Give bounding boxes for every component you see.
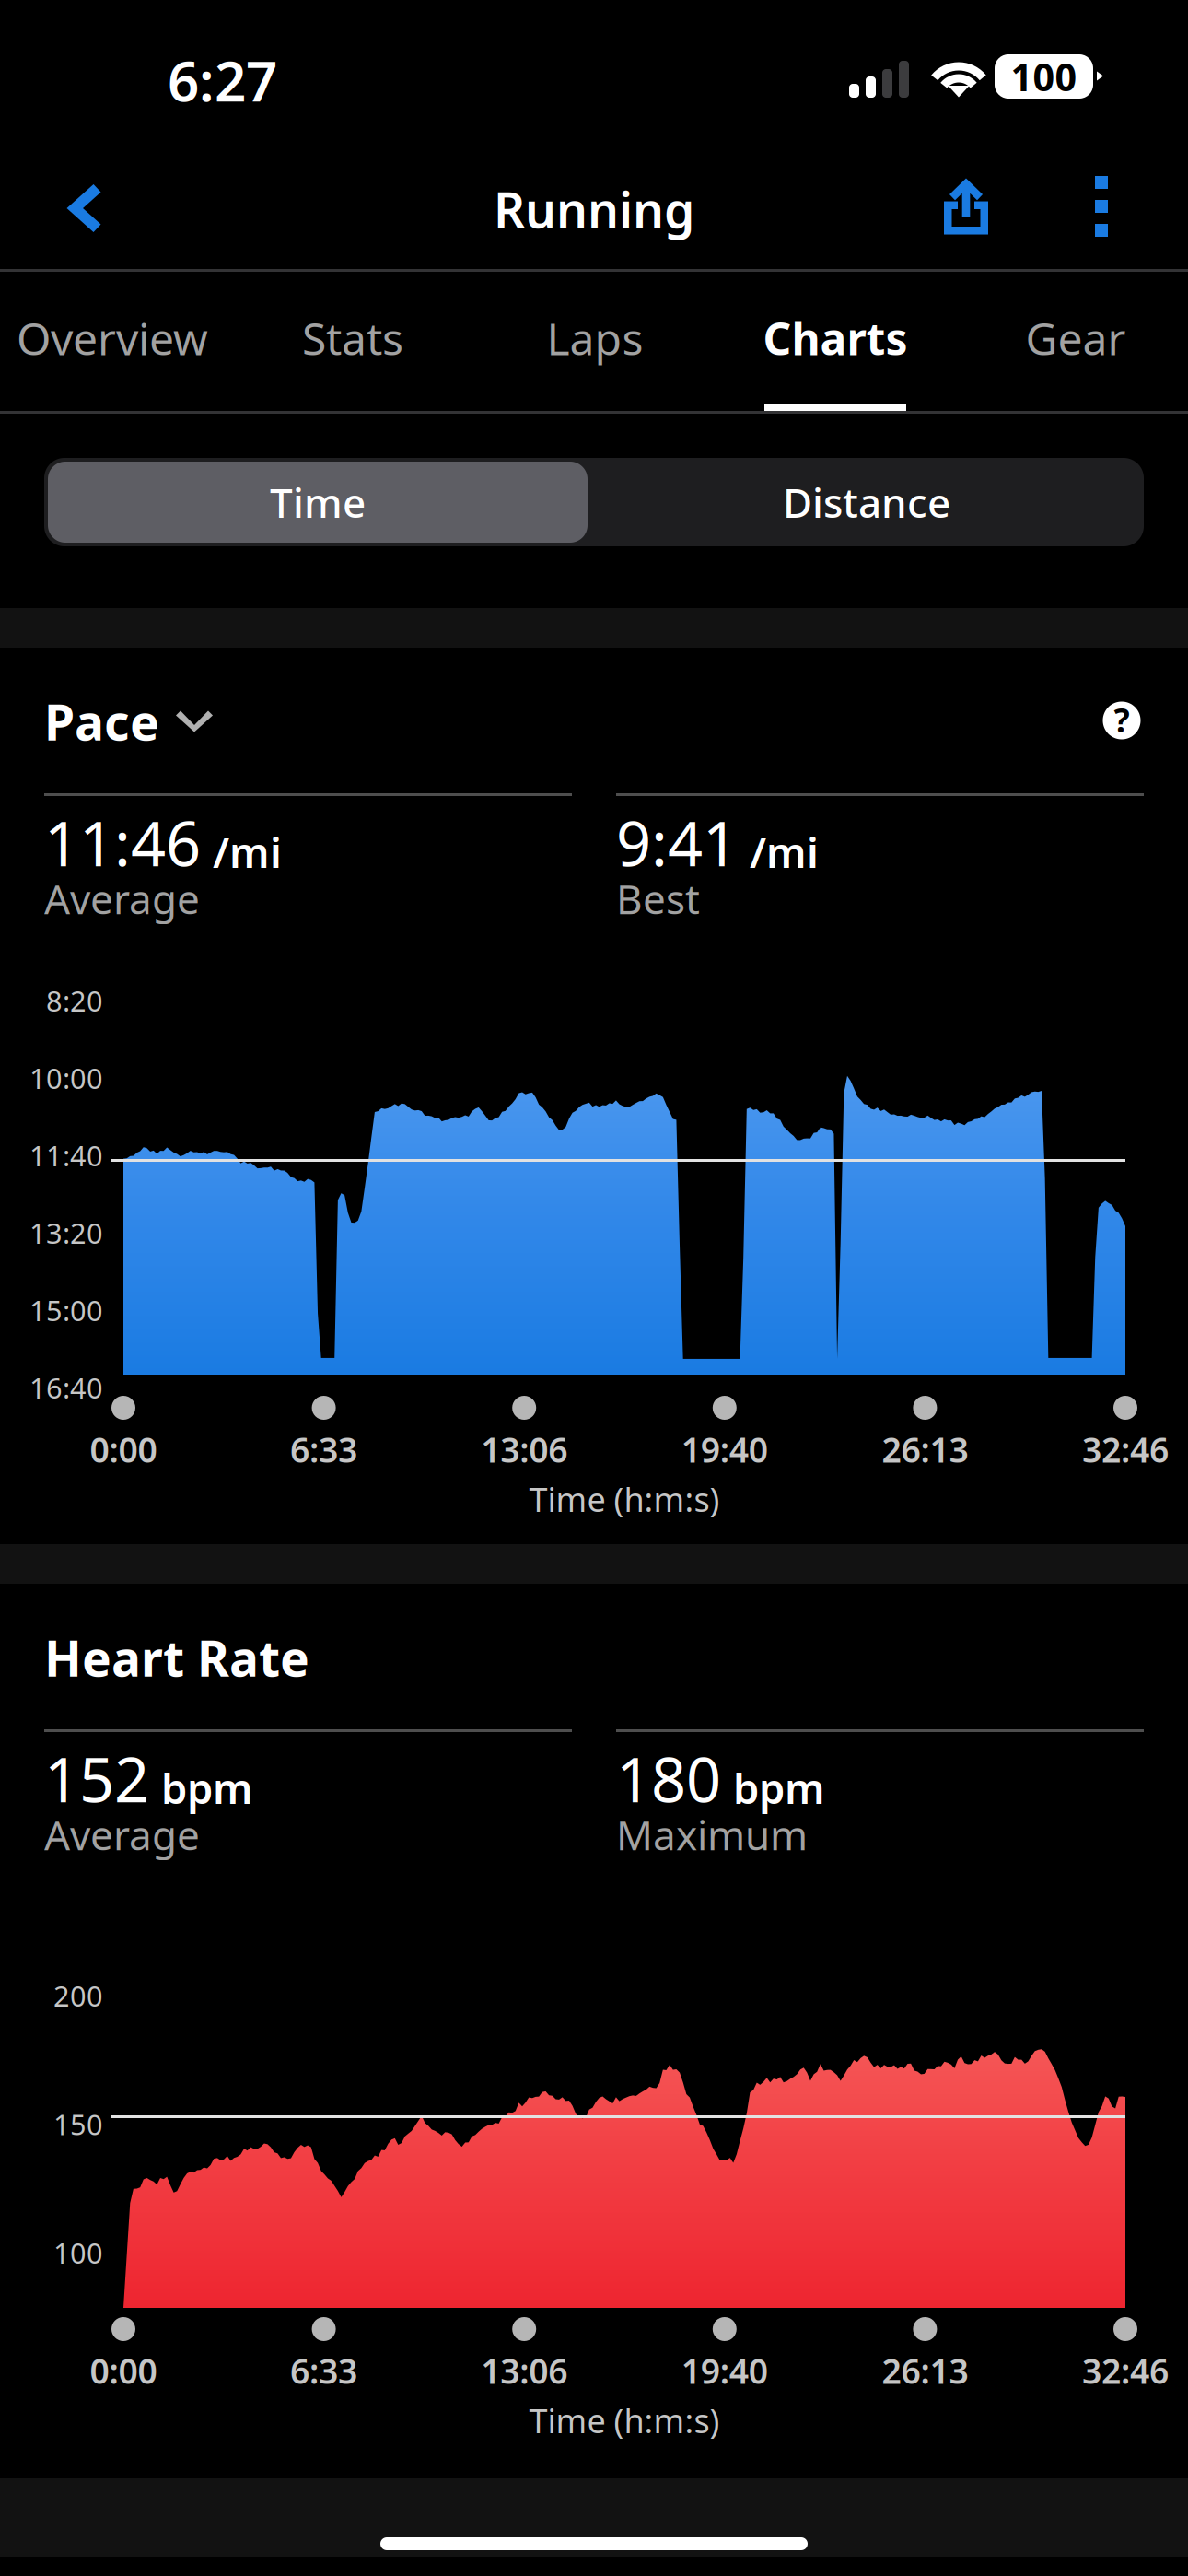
staticText: Charts <box>763 309 908 367</box>
staticText: 150 <box>53 2105 103 2143</box>
staticText: Gear <box>1025 309 1126 367</box>
staticText: Average <box>44 1808 200 1861</box>
staticText: 11:40 <box>29 1137 103 1174</box>
staticText: 13:20 <box>29 1214 103 1251</box>
staticText: 8:20 <box>46 982 103 1019</box>
button[interactable]: Share <box>915 157 1017 256</box>
staticText: 16:40 <box>29 1369 103 1406</box>
staticText: 19:40 <box>681 2348 768 2393</box>
button[interactable]: Overview <box>0 272 227 411</box>
staticText: bpm <box>733 1760 825 1815</box>
staticText: 26:13 <box>882 1426 968 1472</box>
staticText: 26:13 <box>882 2348 968 2393</box>
staticText: Average <box>44 872 200 925</box>
button[interactable]: More options <box>1051 157 1152 256</box>
staticText: /mi <box>213 824 282 879</box>
staticText: 6:33 <box>290 2348 357 2393</box>
staticText: Laps <box>547 309 643 367</box>
staticText: 0:00 <box>90 1426 157 1472</box>
staticText: Overview <box>17 309 208 367</box>
staticText: 32:46 <box>1082 1426 1169 1472</box>
staticText: 11:46 <box>44 802 201 883</box>
staticText: 32:46 <box>1082 2348 1169 2393</box>
staticText: 6:33 <box>290 1426 357 1472</box>
staticText: Heart Rate <box>44 1625 309 1690</box>
staticText: 10:00 <box>29 1059 103 1097</box>
staticText: Distance <box>783 475 950 529</box>
staticText: Pace <box>44 689 159 754</box>
staticText: /mi <box>750 824 819 879</box>
button[interactable]: Laps <box>480 272 710 411</box>
staticText: Stats <box>302 309 403 367</box>
staticText: 6:27 <box>168 43 277 117</box>
staticText: 13:06 <box>481 1426 567 1472</box>
button[interactable]: Gear <box>961 272 1188 411</box>
staticText: 200 <box>53 1977 103 2014</box>
staticText: Time (h:m:s) <box>529 1477 720 1521</box>
button[interactable]: About this chart <box>1076 674 1168 767</box>
staticText: Running <box>494 177 694 242</box>
staticText: bpm <box>161 1760 253 1815</box>
staticText: Time (h:m:s) <box>529 2398 720 2442</box>
staticText: 100 <box>53 2234 103 2271</box>
staticText: ? <box>1114 698 1130 742</box>
button[interactable]: Time <box>48 462 588 543</box>
staticText: 13:06 <box>481 2348 567 2393</box>
staticText: 9:41 <box>616 802 738 883</box>
staticText: Time <box>270 475 366 529</box>
staticText: 152 <box>44 1738 149 1819</box>
staticText: Maximum <box>616 1808 808 1861</box>
button[interactable]: Stats <box>238 272 468 411</box>
staticText: Best <box>616 872 700 925</box>
staticText: 0:00 <box>90 2348 157 2393</box>
staticText: 180 <box>616 1738 721 1819</box>
staticText: 19:40 <box>681 1426 768 1472</box>
button[interactable]: Back <box>33 158 134 258</box>
staticText: 15:00 <box>29 1291 103 1329</box>
button[interactable]: Charts <box>720 272 950 411</box>
button[interactable]: Distance <box>597 462 1136 543</box>
staticText: 100 <box>1011 51 1077 102</box>
